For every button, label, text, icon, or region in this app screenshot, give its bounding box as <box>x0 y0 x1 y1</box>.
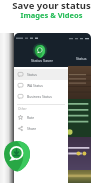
staticText: Status <box>27 72 37 77</box>
staticText: Business Status <box>27 94 52 99</box>
staticText: Other <box>18 107 27 111</box>
button[interactable]: Share <box>14 123 68 134</box>
button[interactable]: Status <box>14 69 68 80</box>
staticText: Status <box>76 56 87 61</box>
button[interactable]: Rate <box>14 112 68 123</box>
staticText: Images & Videos <box>20 10 83 20</box>
staticText: Rate <box>27 115 35 120</box>
other: Status Saver app icon <box>4 141 30 172</box>
staticText: Share <box>27 126 37 131</box>
staticText: Save your status <box>12 0 91 12</box>
button[interactable]: Business Status <box>14 91 68 102</box>
staticText: Status Saver <box>31 58 53 63</box>
staticText: WA Status <box>27 83 43 88</box>
button[interactable]: WA Status <box>14 80 68 91</box>
